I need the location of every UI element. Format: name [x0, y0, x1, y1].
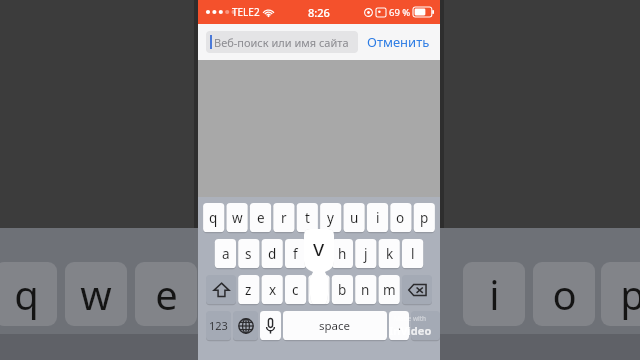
button[interactable]: q [203, 203, 224, 232]
staticText: u [350, 209, 359, 227]
staticText: b [338, 281, 347, 299]
button[interactable]: e [250, 203, 271, 232]
staticText: k [386, 245, 394, 263]
button[interactable]: Веб-поиск или имя сайта [206, 31, 358, 53]
staticText: x [269, 281, 277, 299]
staticText: 123 [209, 318, 228, 333]
staticText: o [552, 267, 577, 321]
staticText: p [620, 267, 640, 321]
staticText: w [232, 209, 243, 227]
staticText: o [396, 209, 405, 227]
button[interactable]: space [283, 311, 387, 340]
staticText: l [411, 245, 415, 263]
button[interactable]: m [379, 275, 400, 304]
button[interactable]: f [285, 239, 306, 268]
staticText: h [338, 245, 347, 263]
button[interactable]: x [262, 275, 283, 304]
staticText: i [376, 209, 380, 227]
staticText: q [209, 209, 218, 227]
staticText: m [383, 281, 396, 299]
button[interactable]: i [367, 203, 388, 232]
button[interactable]: Backspace [402, 275, 432, 304]
button[interactable]: k [379, 239, 400, 268]
button[interactable]: Shift [206, 275, 236, 304]
button[interactable]: u [344, 203, 365, 232]
staticText: z [245, 281, 252, 299]
staticText: InVideo [389, 323, 432, 338]
staticText: q [14, 267, 39, 321]
staticText: Отменить [367, 33, 430, 51]
staticText: n [361, 281, 370, 299]
staticText: e [155, 267, 178, 321]
button[interactable]: p [414, 203, 435, 232]
button[interactable]: a [215, 239, 236, 268]
button[interactable]: o [390, 203, 411, 232]
staticText: w [80, 267, 112, 321]
button[interactable]: s [238, 239, 259, 268]
button[interactable]: r [273, 203, 294, 232]
button[interactable]: l [402, 239, 423, 268]
staticText: e [257, 209, 265, 227]
staticText: Веб-поиск или имя сайта [214, 35, 349, 50]
button[interactable]: w [227, 203, 248, 232]
staticText: a [222, 245, 230, 263]
staticText: i [489, 267, 500, 321]
button[interactable]: z [238, 275, 259, 304]
staticText: s [245, 245, 252, 263]
staticText: TELE2 [232, 5, 260, 19]
staticText: c [292, 281, 299, 299]
staticText: Made with [394, 314, 427, 323]
button[interactable]: Отменить [365, 29, 432, 55]
staticText: 69 % [389, 6, 411, 19]
button[interactable]: b [332, 275, 353, 304]
button[interactable]: n [355, 275, 376, 304]
staticText: v [313, 232, 325, 262]
staticText: y [327, 209, 334, 227]
staticText: f [293, 245, 298, 263]
button[interactable]: . [389, 311, 409, 340]
button[interactable]: Change keyboard [233, 311, 258, 340]
button[interactable]: d [262, 239, 283, 268]
button[interactable]: y [320, 203, 341, 232]
staticText: r [281, 209, 287, 227]
staticText: space [319, 318, 351, 334]
staticText: 8:26 [308, 5, 330, 20]
staticText: t [305, 209, 310, 227]
staticText: p [420, 209, 429, 227]
button[interactable]: c [285, 275, 306, 304]
button[interactable]: Dictation [260, 311, 281, 340]
staticText: . [398, 318, 401, 333]
staticText: d [268, 245, 277, 263]
button[interactable]: t [297, 203, 318, 232]
staticText: j [364, 245, 368, 263]
button[interactable]: 123 [206, 311, 231, 340]
button[interactable]: j [355, 239, 376, 268]
button[interactable]: h [332, 239, 353, 268]
